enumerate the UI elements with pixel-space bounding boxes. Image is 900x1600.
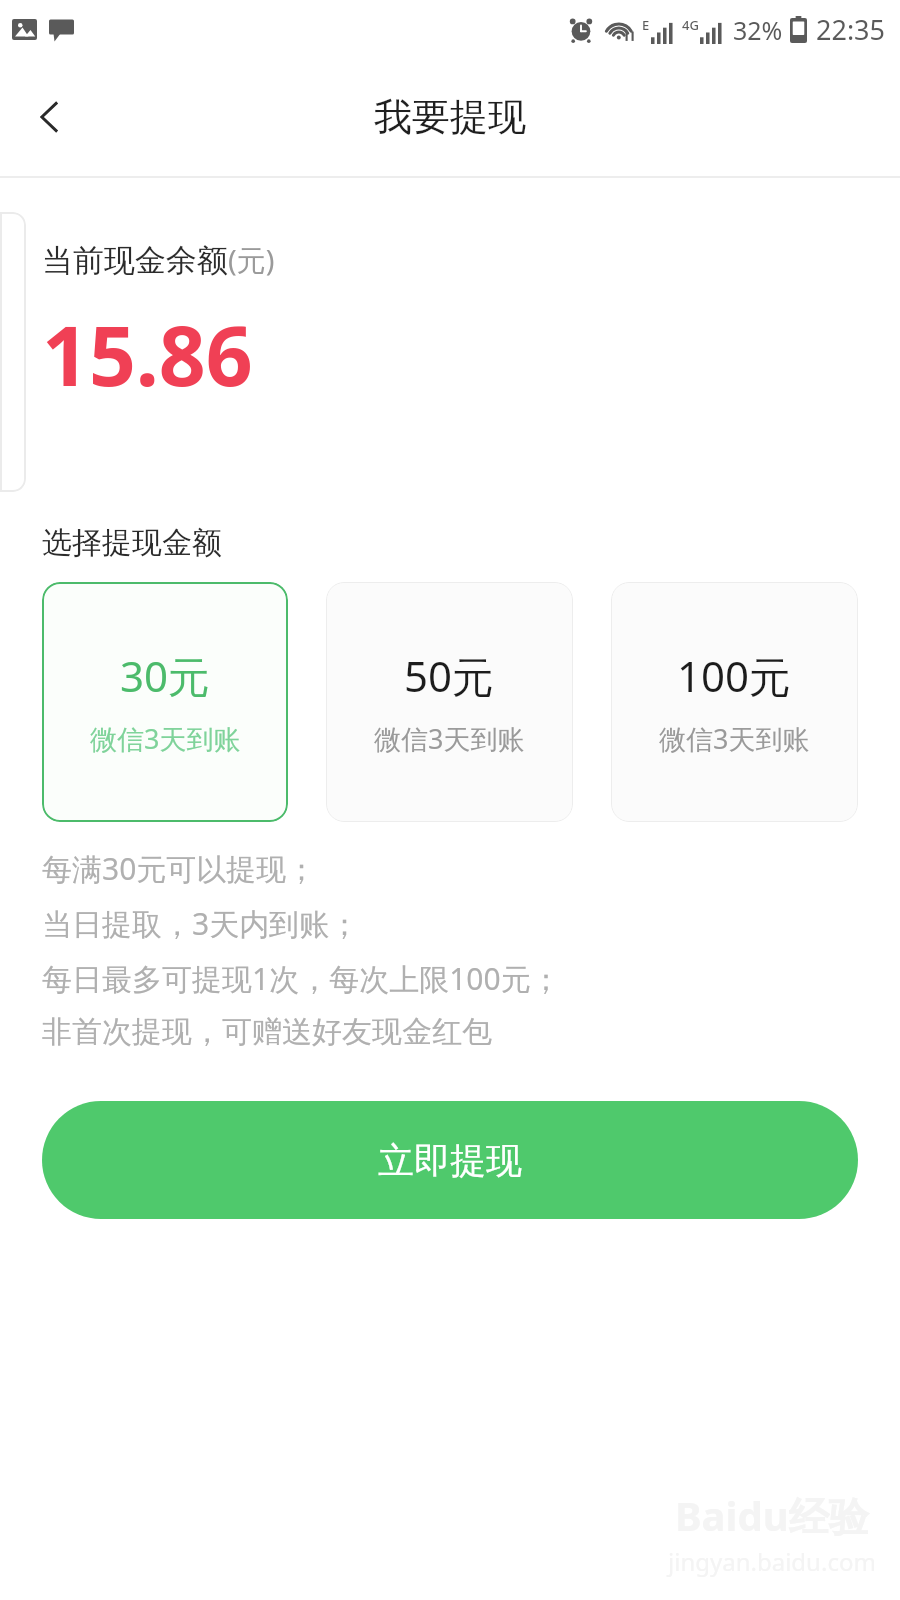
staticText: 15.86 [42,298,253,410]
staticText: 当前现金余额(元) [42,240,275,280]
staticText: 立即提现 [378,1138,522,1183]
button[interactable]: 50元 [326,582,573,822]
staticText: 每满30元可以提现； [42,848,317,889]
staticText: 32% [733,13,783,47]
staticText: 22:35 [816,11,886,48]
button[interactable]: 100元 [611,582,858,822]
staticText: jingyan.baidu.com [668,1545,876,1578]
staticText: 我要提现 [374,93,526,141]
staticText: 4G [682,16,699,34]
staticText: 100元 [677,647,792,704]
staticText: 50元 [404,647,495,704]
button[interactable]: 30元 [42,582,288,822]
button[interactable]: 立即提现 [42,1101,858,1219]
button[interactable]: Back [12,79,88,155]
staticText: E [642,16,650,34]
staticText: 选择提现金额 [42,524,222,562]
staticText: 微信3天到账 [374,720,525,757]
staticText: 每日最多可提现1次，每次上限100元； [42,958,561,999]
staticText: 当日提取，3天内到账； [42,903,360,944]
staticText: 30元 [120,647,211,704]
staticText: Baidu经验 [675,1488,869,1543]
staticText: 微信3天到账 [659,720,810,757]
staticText: 非首次提现，可赠送好友现金红包 [42,1013,492,1051]
staticText: 微信3天到账 [90,720,241,757]
